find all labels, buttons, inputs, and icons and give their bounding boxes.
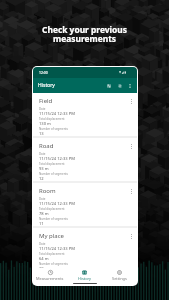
button[interactable]: History: [67, 270, 102, 281]
button[interactable]: Item options: [127, 187, 135, 195]
button[interactable]: Sort: [114, 80, 125, 91]
staticText: Number of segments: [39, 127, 68, 131]
staticText: 12: [39, 176, 44, 181]
button[interactable]: Road: [33, 138, 137, 181]
staticText: History: [78, 276, 92, 281]
staticText: Number of segments: [39, 217, 68, 221]
button[interactable]: More options: [125, 81, 135, 91]
staticText: 13: [39, 131, 44, 136]
button[interactable]: My place: [33, 228, 137, 268]
button[interactable]: Settings: [102, 270, 137, 281]
staticText: Room: [39, 187, 56, 195]
staticText: 78 m: [39, 211, 49, 217]
staticText: Date: [39, 152, 46, 156]
staticText: 11/15/24 12:33 PM: [39, 201, 75, 207]
staticText: 11/15/24 12:33 PM: [39, 111, 75, 117]
staticText: 93 m: [39, 166, 49, 172]
button[interactable]: Measurements: [33, 270, 67, 281]
staticText: My place: [39, 232, 64, 240]
staticText: Check your previous measurements: [0, 24, 169, 45]
staticText: Date: [39, 197, 46, 201]
staticText: Date: [39, 242, 46, 246]
staticText: Measurements: [36, 276, 64, 281]
button[interactable]: Item options: [127, 97, 135, 105]
staticText: 64 m: [39, 256, 49, 262]
button[interactable]: Field: [33, 93, 137, 136]
staticText: 11: [39, 221, 44, 226]
staticText: Total displacement: [39, 162, 65, 166]
staticText: Road: [39, 142, 54, 150]
button[interactable]: Item options: [127, 142, 135, 150]
staticText: History: [38, 82, 55, 89]
staticText: 11/15/24 12:33 PM: [39, 156, 75, 162]
staticText: Total displacement: [39, 207, 65, 211]
button[interactable]: Item options: [127, 232, 135, 240]
staticText: 10: [39, 266, 44, 268]
staticText: Date: [39, 107, 46, 111]
staticText: 130 m: [39, 121, 51, 127]
staticText: Settings: [112, 276, 127, 281]
staticText: Number of segments: [39, 262, 68, 266]
button[interactable]: Room: [33, 183, 137, 226]
staticText: Total displacement: [39, 117, 65, 121]
staticText: Total displacement: [39, 252, 65, 256]
staticText: Number of segments: [39, 172, 68, 176]
staticText: 11/15/24 12:33 PM: [39, 246, 75, 252]
staticText: Field: [39, 97, 53, 105]
staticText: 12:00: [39, 70, 48, 75]
button[interactable]: Tune: [103, 80, 114, 91]
